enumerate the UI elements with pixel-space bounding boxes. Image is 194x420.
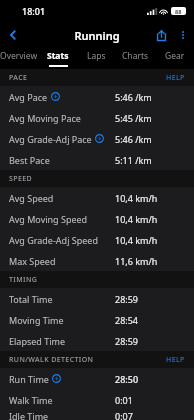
button[interactable]: Idle Time: [0, 410, 194, 420]
button[interactable]: Avg Moving Speed: [0, 208, 194, 229]
staticText: Idle Time: [9, 410, 49, 420]
staticText: 28:54: [115, 314, 139, 326]
staticText: RUN/WALK DETECTION: [9, 355, 94, 365]
staticText: 5:11 /km: [115, 154, 152, 166]
staticText: Max Speed: [9, 255, 56, 267]
button[interactable]: Best Pace: [0, 149, 194, 170]
staticText: HELP: [166, 73, 185, 83]
staticText: Gear: [165, 50, 185, 62]
staticText: HELP: [166, 355, 185, 365]
button[interactable]: HELP: [166, 355, 185, 368]
button[interactable]: Avg Moving Pace: [0, 107, 194, 128]
staticText: 28:50: [115, 373, 139, 385]
button[interactable]: Avg Grade-Adj Speed: [0, 229, 194, 250]
button[interactable]: Total Time: [0, 288, 194, 309]
staticText: Avg Grade-Adj Speed: [9, 234, 98, 246]
button[interactable]: Max Speed: [0, 250, 194, 271]
button[interactable]: Moving Time: [0, 309, 194, 330]
staticText: 5:46 /km: [115, 133, 152, 145]
staticText: 10,4 km/h: [115, 234, 158, 246]
staticText: 11,6 km/h: [115, 255, 158, 267]
staticText: 10,4 km/h: [115, 213, 158, 225]
button[interactable]: Gear: [155, 48, 194, 69]
staticText: Charts: [122, 50, 149, 62]
button[interactable]: Share: [150, 24, 172, 46]
button[interactable]: More options: [172, 24, 194, 46]
button[interactable]: Elapsed Time: [0, 330, 194, 351]
staticText: 10,4 km/h: [115, 192, 158, 204]
button[interactable]: Avg Pace: [0, 86, 194, 107]
staticText: Best Pace: [9, 154, 50, 166]
staticText: Stats: [47, 50, 69, 62]
staticText: Elapsed Time: [9, 335, 65, 347]
staticText: Avg Speed: [9, 192, 54, 204]
staticText: 28:59: [115, 335, 139, 347]
staticText: Running: [74, 28, 120, 43]
staticText: PACE: [9, 73, 28, 83]
staticText: 88: [175, 8, 182, 15]
staticText: 0:07: [115, 410, 133, 420]
button[interactable]: Avg Grade-Adj Pace: [0, 128, 194, 149]
staticText: 0:01: [115, 394, 133, 406]
staticText: Moving Time: [9, 314, 64, 326]
staticText: Laps: [87, 50, 106, 62]
button[interactable]: Run Time: [0, 368, 194, 389]
staticText: SPEED: [9, 174, 33, 184]
button[interactable]: Back: [0, 22, 26, 48]
staticText: Run Time: [9, 373, 49, 385]
staticText: 18:01: [22, 5, 46, 17]
button[interactable]: Charts: [116, 48, 155, 69]
staticText: Total Time: [9, 293, 53, 305]
staticText: Avg Grade-Adj Pace: [9, 133, 92, 145]
staticText: Avg Moving Speed: [9, 213, 88, 225]
button[interactable]: Laps: [77, 48, 116, 69]
staticText: Avg Moving Pace: [9, 112, 81, 124]
staticText: Overview: [0, 50, 38, 62]
button[interactable]: Avg Speed: [0, 187, 194, 208]
button[interactable]: Overview: [0, 48, 38, 69]
button[interactable]: HELP: [166, 73, 185, 86]
staticText: 5:45 /km: [115, 112, 152, 124]
staticText: Walk Time: [9, 394, 53, 406]
button[interactable]: Walk Time: [0, 389, 194, 410]
button[interactable]: Stats: [38, 48, 77, 69]
staticText: TIMING: [9, 275, 38, 285]
staticText: 28:59: [115, 293, 139, 305]
staticText: 5:46 /km: [115, 91, 152, 103]
staticText: Avg Pace: [9, 91, 48, 103]
